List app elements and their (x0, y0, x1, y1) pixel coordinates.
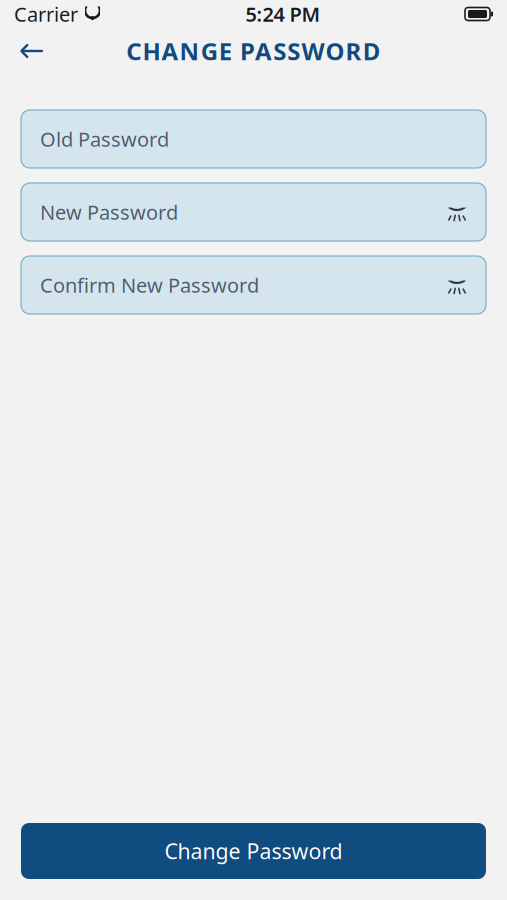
button[interactable]: Change Password (21, 823, 486, 879)
staticText: New Password (40, 199, 178, 225)
button[interactable]: Show password (439, 194, 475, 230)
staticText: Change Password (164, 837, 342, 865)
staticText: Old Password (40, 126, 169, 152)
staticText: 5:24 PM (245, 1, 320, 27)
button[interactable]: Show password (439, 267, 475, 303)
button[interactable]: Back (10, 31, 54, 71)
staticText: Confirm New Password (40, 272, 259, 298)
staticText: Carrier (14, 1, 78, 27)
staticText: CHANGE PASSWORD (126, 35, 381, 67)
